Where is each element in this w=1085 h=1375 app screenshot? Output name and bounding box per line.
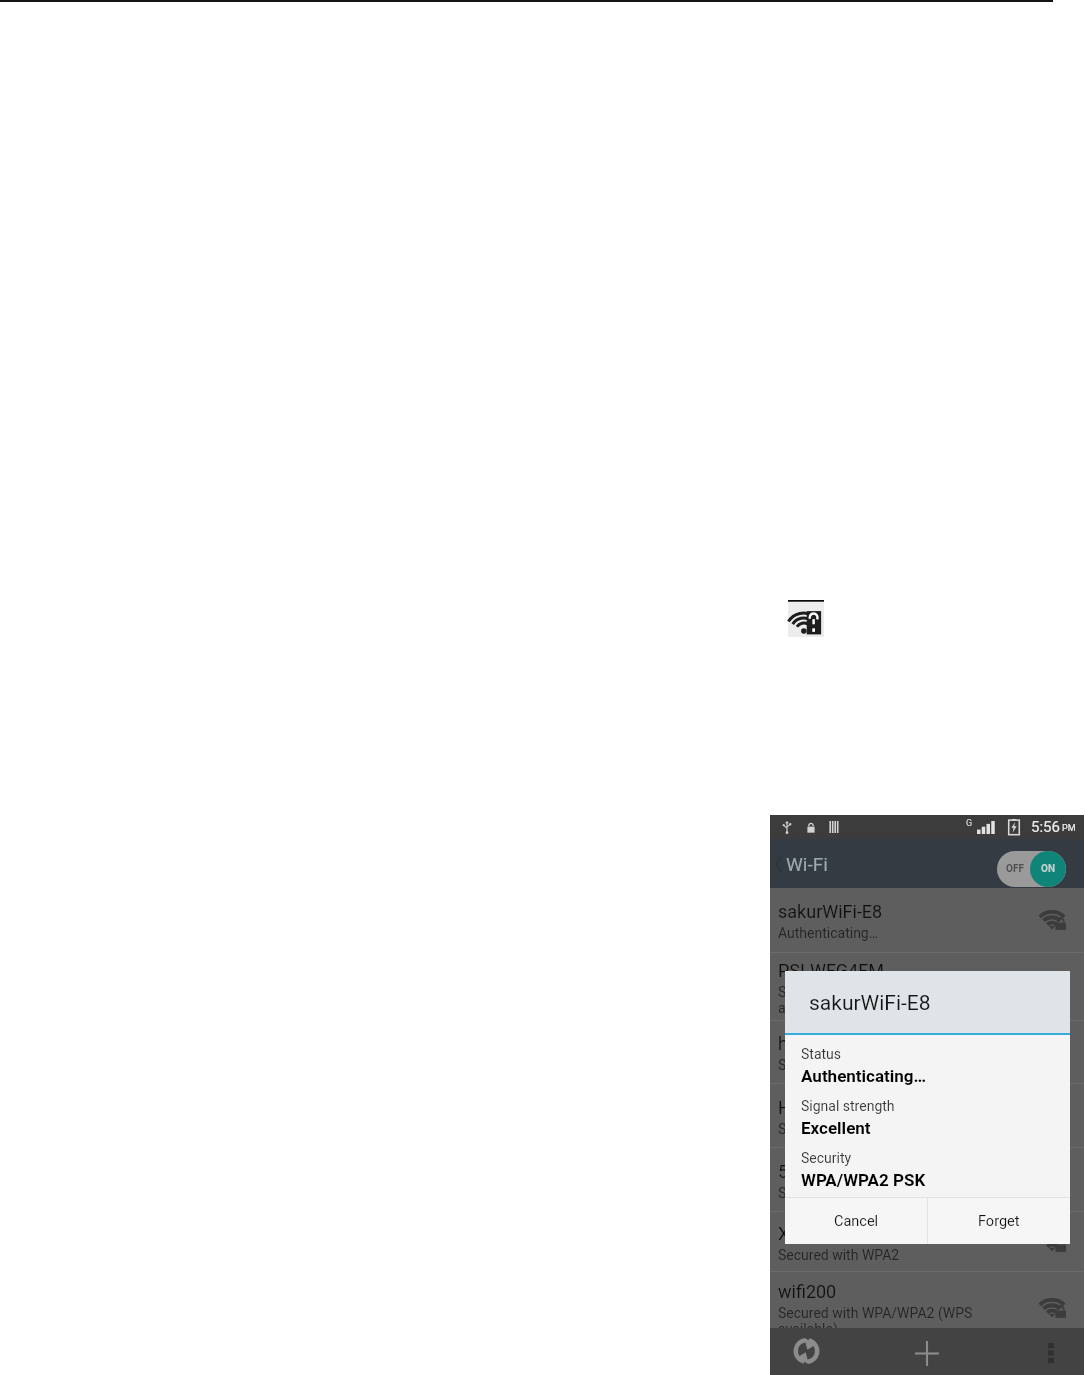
button[interactable]: hostpot [770, 1021, 1084, 1083]
button[interactable]: 5G-Network [770, 1148, 1084, 1211]
button[interactable]: Wi-Fi on [997, 851, 1066, 887]
button[interactable]: wifi200 [770, 1272, 1084, 1344]
staticText: ON [1041, 863, 1055, 875]
staticText: wifi200 [778, 1281, 837, 1302]
button[interactable]: sakurWiFi-E8 [770, 888, 1084, 952]
button[interactable]: Cancel [785, 1198, 927, 1244]
staticText: Wi-Fi [786, 853, 828, 875]
staticText: Status [801, 1046, 842, 1062]
staticText: Excellent [801, 1118, 871, 1138]
staticText: sakurWiFi-E8 [809, 991, 931, 1016]
staticText: G [966, 818, 973, 829]
staticText: HOME-A3D2 [778, 1097, 878, 1118]
staticText: sakurWiFi-E8 [778, 901, 883, 922]
staticText: Secured with WPA2 [778, 1121, 900, 1137]
staticText: Secured with WPA/WPA2 (WPS [778, 984, 973, 1000]
staticText: Forget [978, 1213, 1020, 1230]
button[interactable]: More options [1031, 1333, 1071, 1373]
staticText: Signal strength [801, 1098, 895, 1114]
staticText: 5:56 [1031, 818, 1060, 836]
button[interactable]: XperiaZ3 [770, 1212, 1084, 1271]
staticText: available) [778, 1321, 838, 1337]
staticText: 5G-Network [778, 1161, 873, 1182]
staticText: available) [778, 1000, 838, 1016]
staticText: hostpot [778, 1033, 840, 1054]
staticText: PM [1062, 823, 1076, 834]
staticText: Secured with WPA2 [778, 1247, 900, 1263]
button[interactable]: PSI-WFG4FM [770, 953, 1084, 1020]
staticText: Authenticating… [801, 1066, 927, 1086]
button[interactable]: Add network [907, 1333, 947, 1373]
staticText: PSI-WFG4FM [778, 960, 884, 981]
staticText: XperiaZ3 [778, 1223, 851, 1244]
button[interactable]: Scan [786, 1329, 826, 1373]
staticText: OFF [1006, 863, 1024, 875]
button[interactable]: HOME-A3D2 [770, 1084, 1084, 1147]
staticText: WPA/WPA2 PSK [801, 1170, 926, 1190]
staticText: Secured with WPA/WPA2 (WPS [778, 1305, 973, 1321]
staticText: Secured with WPA2 [778, 1057, 900, 1073]
staticText: Secured with WPA2 [778, 1185, 900, 1201]
staticText: Authenticating… [778, 925, 879, 941]
button[interactable]: Forget [928, 1198, 1070, 1244]
staticText: Security [801, 1150, 852, 1166]
staticText: Cancel [834, 1213, 879, 1230]
